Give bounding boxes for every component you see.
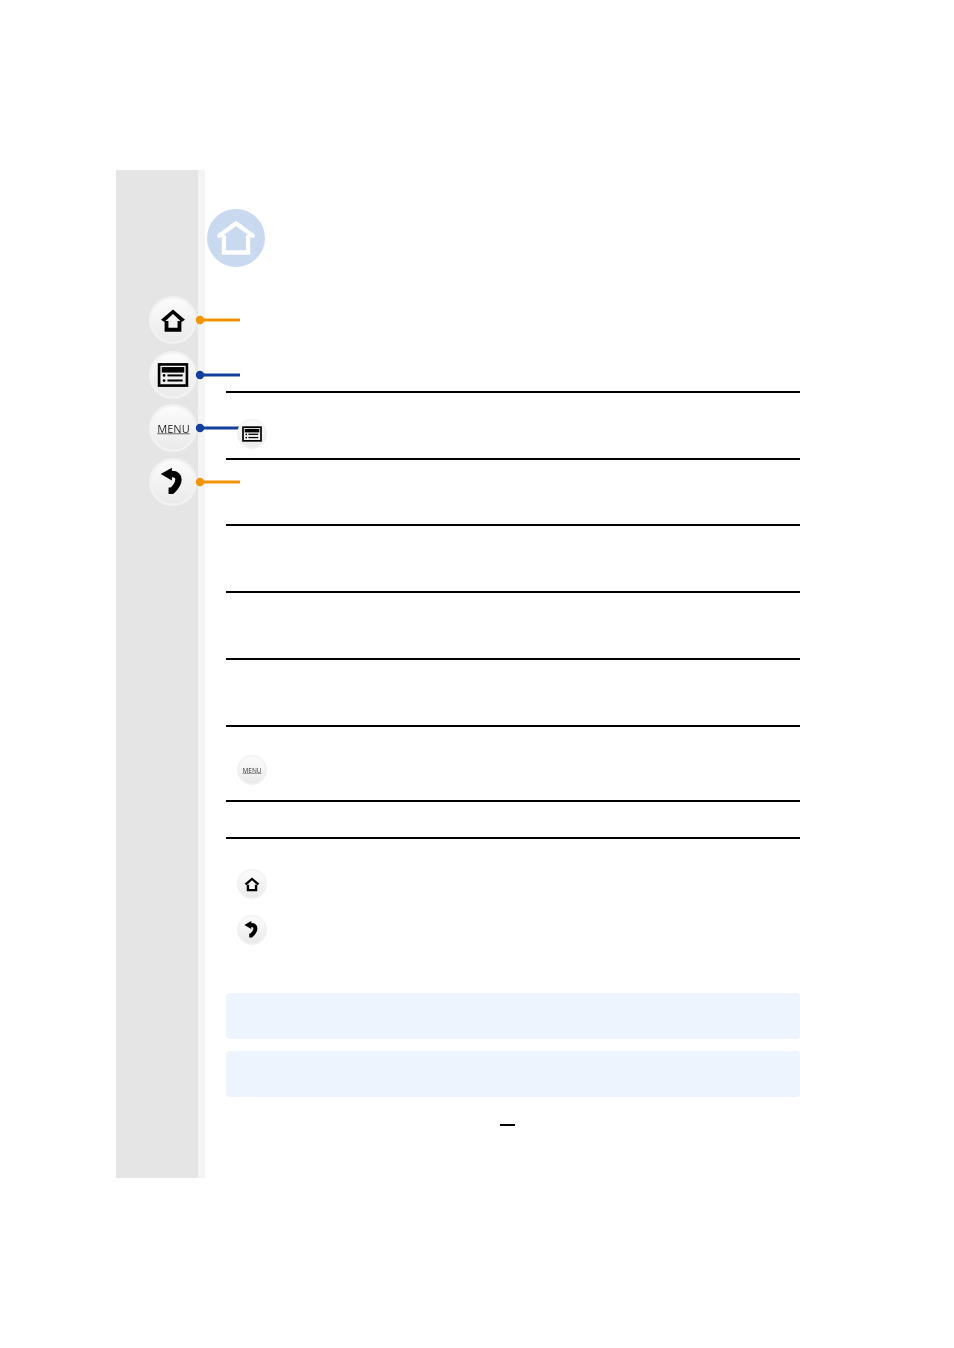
button[interactable]: Menu xyxy=(149,404,197,452)
staticText: MENU xyxy=(157,421,190,436)
button[interactable]: Home xyxy=(237,869,267,899)
button[interactable]: Menu list xyxy=(237,419,267,449)
button[interactable]: Menu xyxy=(237,755,267,785)
button[interactable]: Menu list xyxy=(149,351,197,399)
button[interactable]: Back xyxy=(237,915,267,945)
button[interactable]: Home xyxy=(149,296,197,344)
staticText: MENU xyxy=(242,766,262,775)
button[interactable]: Home xyxy=(207,209,265,267)
button[interactable]: Back xyxy=(149,458,197,506)
